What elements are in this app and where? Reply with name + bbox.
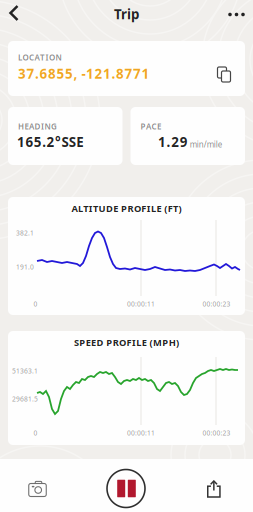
staticText: Trip xyxy=(114,5,139,23)
staticText: 51363.1 xyxy=(12,367,38,375)
button[interactable]: Pause xyxy=(107,469,145,507)
staticText: ALTITUDE PROFILE (FT) xyxy=(71,202,181,215)
staticText: 0 xyxy=(33,429,37,437)
staticText: HEADING xyxy=(18,121,57,132)
staticText: 00:00:11 xyxy=(127,300,155,308)
staticText: PACE xyxy=(140,121,161,132)
staticText: 00:00:11 xyxy=(127,429,155,437)
button[interactable]: More xyxy=(227,10,247,18)
staticText: LOCATION xyxy=(18,52,61,63)
staticText: 00:00:23 xyxy=(202,429,230,437)
staticText: 1.29 xyxy=(158,133,188,151)
button[interactable]: Share xyxy=(207,480,221,498)
staticText: 0 xyxy=(33,300,37,308)
staticText: 165.2°SSE xyxy=(17,133,83,151)
staticText: 191.0 xyxy=(16,263,34,271)
button[interactable]: Back xyxy=(6,5,22,21)
staticText: 00:00:23 xyxy=(202,300,230,308)
staticText: 37.6855, -121.8771 xyxy=(18,65,149,82)
staticText: 29681.5 xyxy=(12,395,38,403)
button[interactable]: Copy coordinates xyxy=(217,66,231,82)
staticText: 382.1 xyxy=(16,229,34,237)
staticText: SPEED PROFILE (MPH) xyxy=(74,336,179,349)
button[interactable]: Camera xyxy=(28,481,46,497)
staticText: min/mile xyxy=(190,139,223,150)
